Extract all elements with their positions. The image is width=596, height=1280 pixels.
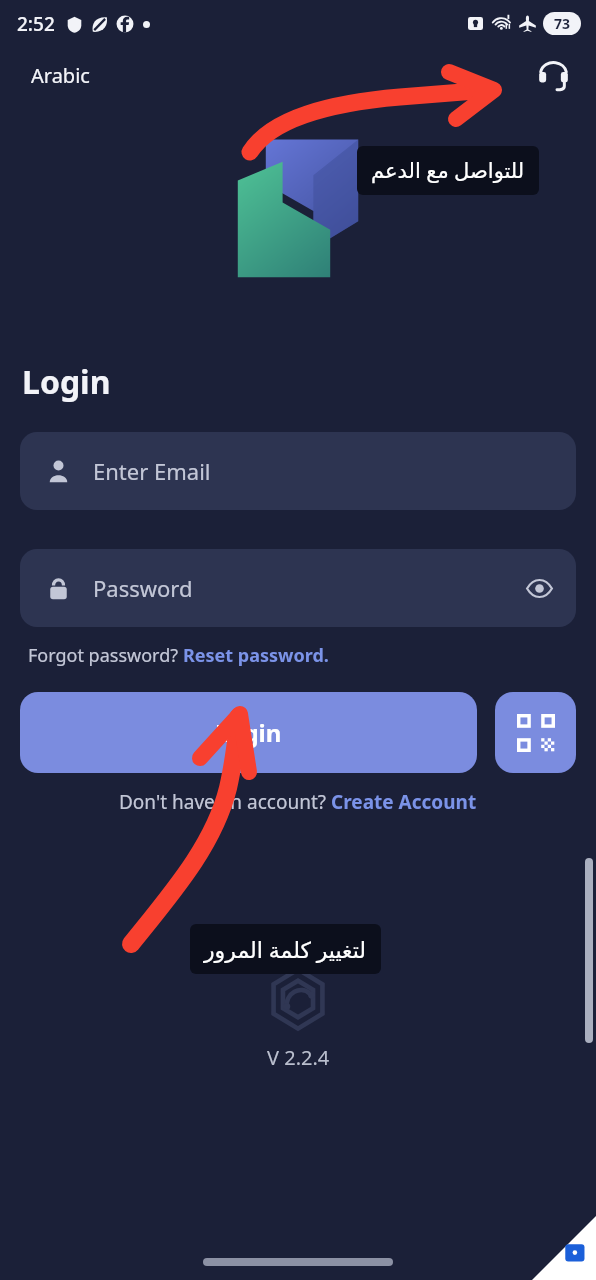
staticText: POWERED BY xyxy=(230,927,367,952)
staticText: Don't have an account? xyxy=(119,789,331,815)
staticText: Login xyxy=(215,716,282,749)
staticText: 73 xyxy=(554,14,571,33)
staticText: Reset password. xyxy=(183,643,329,668)
button[interactable]: Login xyxy=(20,692,477,773)
button[interactable]: Create Account xyxy=(331,789,477,815)
staticText: Password xyxy=(93,573,518,603)
staticText: Forgot password? xyxy=(28,643,183,668)
button[interactable]: Enter Email xyxy=(20,432,576,510)
button[interactable]: Password xyxy=(20,549,576,627)
button[interactable]: Scan QR code xyxy=(495,692,576,773)
button[interactable]: Reset password. xyxy=(183,643,329,668)
staticText: لتغيير كلمة المرور xyxy=(204,934,367,964)
staticText: Create Account xyxy=(331,789,477,815)
staticText: 2:52 xyxy=(17,11,55,37)
button[interactable]: Arabic xyxy=(26,57,95,94)
staticText: V 2.2.4 xyxy=(267,1044,330,1071)
staticText: للتواصل مع الدعم xyxy=(371,156,525,185)
staticText: Enter Email xyxy=(93,456,211,486)
button[interactable]: Contact support xyxy=(530,52,576,98)
staticText: Arabic xyxy=(31,62,90,89)
button[interactable]: Show password xyxy=(518,567,560,609)
staticText: Login xyxy=(22,360,111,404)
